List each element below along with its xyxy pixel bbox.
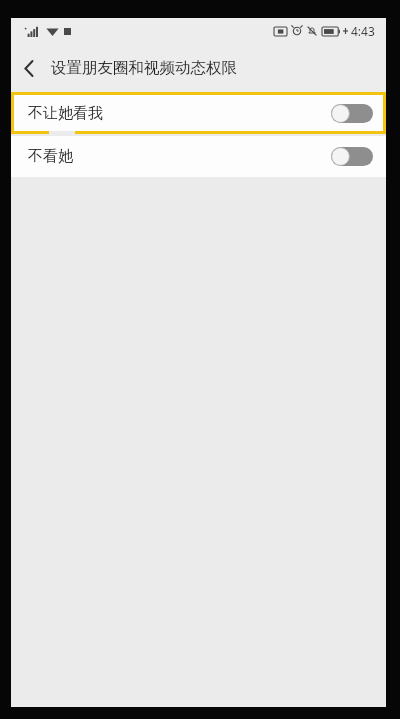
button[interactable]: 不看她 [11,136,386,177]
staticText: 4:43 [351,23,375,39]
staticText: 不让她看我 [28,104,103,123]
button[interactable]: Toggle [331,104,373,123]
button[interactable]: Toggle [331,147,373,166]
button[interactable]: Back [11,44,47,92]
staticText: 不看她 [28,147,73,166]
staticText: 设置朋友圈和视频动态权限 [51,58,237,78]
button[interactable]: 不让她看我 [11,92,386,134]
